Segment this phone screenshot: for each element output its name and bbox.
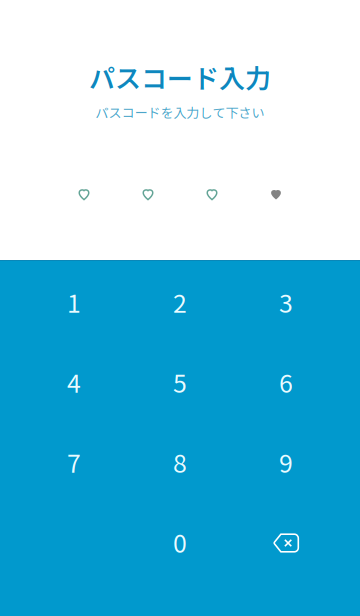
button[interactable]: 1 bbox=[21, 263, 127, 343]
button[interactable]: 2 bbox=[127, 263, 233, 343]
button[interactable]: 4 bbox=[21, 343, 127, 423]
button[interactable]: Delete bbox=[233, 503, 339, 583]
staticText: 1 bbox=[67, 284, 81, 320]
staticText: パスコードを入力して下さい bbox=[95, 103, 264, 121]
staticText: 0 bbox=[173, 524, 187, 560]
staticText: 9 bbox=[279, 444, 293, 480]
staticText: 3 bbox=[279, 284, 293, 320]
button[interactable]: 6 bbox=[233, 343, 339, 423]
button[interactable]: 9 bbox=[233, 423, 339, 503]
button[interactable]: 7 bbox=[21, 423, 127, 503]
staticText: 5 bbox=[173, 364, 187, 400]
staticText: 6 bbox=[279, 364, 293, 400]
button[interactable]: 5 bbox=[127, 343, 233, 423]
staticText: 7 bbox=[67, 444, 81, 480]
staticText: パスコード入力 bbox=[89, 58, 271, 96]
staticText: 4 bbox=[67, 364, 81, 400]
button[interactable]: 3 bbox=[233, 263, 339, 343]
staticText: 8 bbox=[173, 444, 187, 480]
button[interactable]: 8 bbox=[127, 423, 233, 503]
staticText: 2 bbox=[173, 284, 187, 320]
button[interactable]: 0 bbox=[127, 503, 233, 583]
